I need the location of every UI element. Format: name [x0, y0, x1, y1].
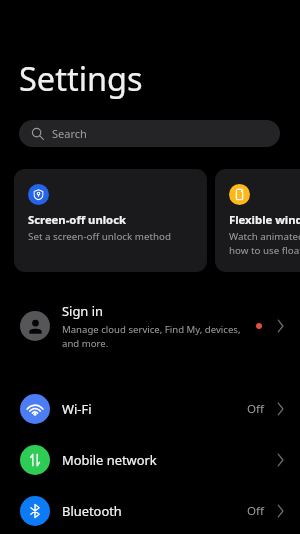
staticText: Off [247, 503, 265, 519]
staticText: Screen-off unlock [28, 212, 126, 227]
staticText: Wi-Fi [62, 400, 247, 418]
staticText: Search [52, 126, 87, 141]
staticText: Flexible window [229, 212, 300, 227]
button[interactable]: Flexible window [215, 169, 300, 272]
staticText: Bluetooth [62, 502, 247, 520]
other: Mobile network [20, 445, 50, 475]
button[interactable]: Screen-off unlock [14, 169, 207, 272]
button[interactable]: Bluetooth [0, 485, 300, 534]
staticText: Off [247, 401, 265, 417]
staticText: Mobile network [62, 451, 273, 469]
staticText: Sign in [62, 302, 103, 320]
button[interactable]: Sign in [0, 292, 300, 360]
button[interactable]: Search [19, 120, 280, 147]
button[interactable]: Mobile network [0, 434, 300, 485]
staticText: Manage cloud service, Find My, devices, … [62, 323, 241, 350]
other: Wi-Fi [20, 394, 50, 424]
staticText: Watch animated demos to learn how to use… [229, 230, 300, 257]
other: Bluetooth [20, 496, 50, 526]
staticText: Set a screen-off unlock method [28, 230, 172, 243]
staticText: Settings [19, 56, 143, 100]
button[interactable]: Wi-Fi [0, 383, 300, 434]
